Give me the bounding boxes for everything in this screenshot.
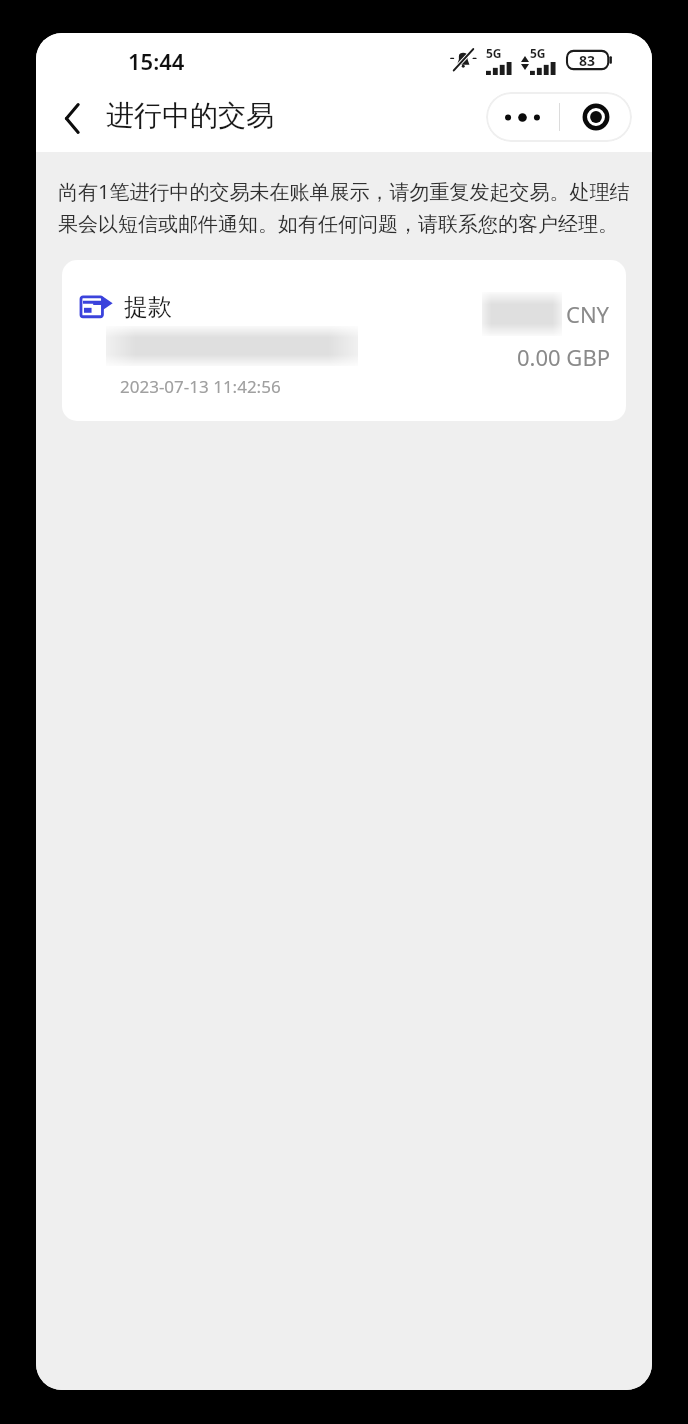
button[interactable]: 返回 — [44, 92, 100, 144]
button[interactable]: 提款 — [62, 260, 626, 421]
staticText: CNY — [566, 299, 610, 329]
staticText: 进行中的交易 — [106, 98, 274, 133]
staticText: 5G — [486, 45, 502, 61]
staticText: 提款 — [124, 292, 172, 322]
button[interactable]: 关闭 — [560, 92, 632, 142]
staticText: 0.00 GBP — [517, 342, 610, 372]
staticText: 尚有1笔进行中的交易未在账单展示，请勿重复发起交易。处理结果会以短信或邮件通知。… — [58, 178, 634, 237]
button[interactable]: 更多 — [486, 92, 559, 142]
staticText: 15:44 — [128, 46, 185, 76]
staticText: 2023-07-13 11:42:56 — [120, 375, 281, 398]
staticText: 83 — [579, 51, 596, 70]
staticText: 5G — [530, 45, 546, 61]
